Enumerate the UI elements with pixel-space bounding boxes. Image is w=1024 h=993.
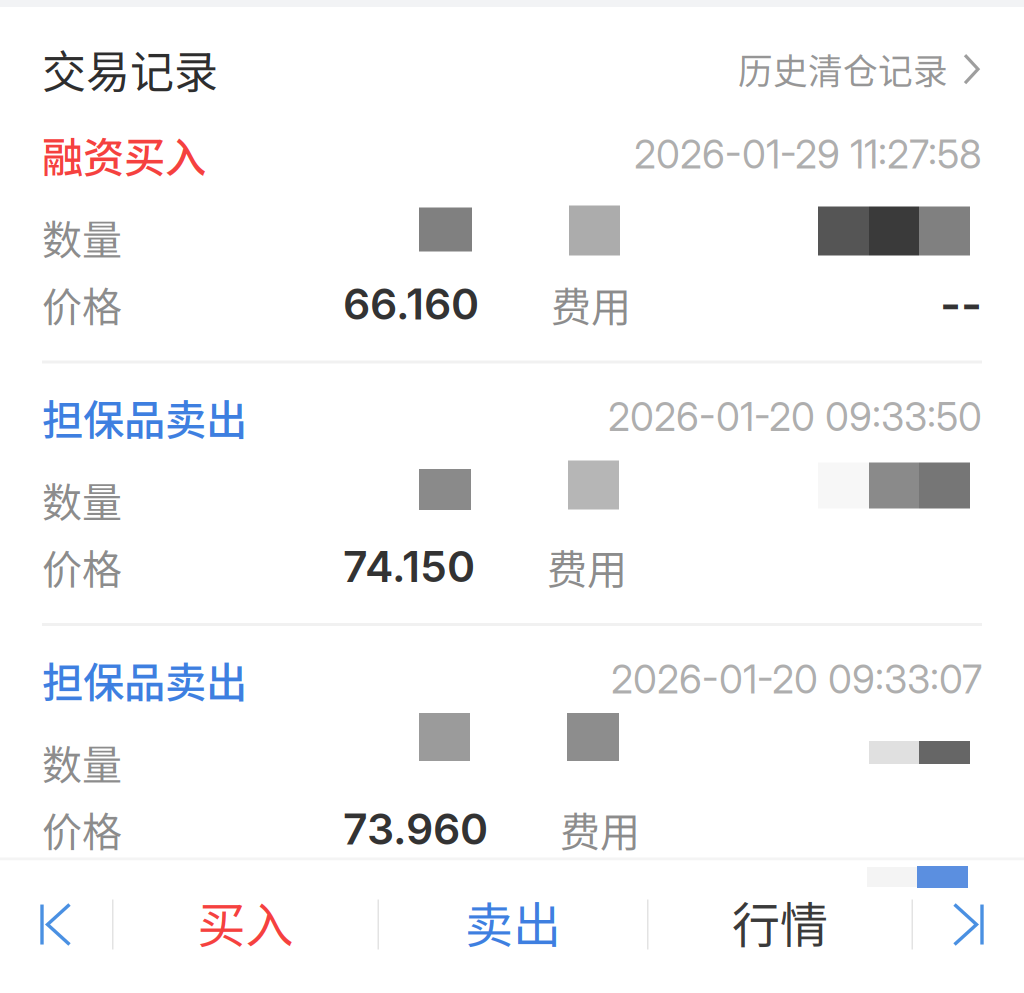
staticText: 卖出 [465, 887, 561, 956]
button[interactable]: 下一个 [913, 857, 1023, 991]
staticText: 费用 [560, 800, 640, 858]
staticText: 数量 [42, 470, 122, 528]
staticText: 历史清仓记录 [738, 44, 948, 94]
staticText: 担保品卖出 [42, 387, 247, 447]
staticText: 价格 [42, 800, 122, 858]
button[interactable]: 上一个 [0, 857, 112, 991]
staticText: 行情 [732, 887, 828, 956]
button[interactable]: 卖出 [379, 858, 647, 991]
staticText: 2026-01-20 09:33:07 [611, 656, 982, 703]
staticText: 买入 [197, 887, 293, 956]
staticText: 交易记录 [42, 37, 218, 101]
staticText: 2026-01-29 11:27:58 [634, 131, 982, 178]
button[interactable]: 行情 [648, 858, 911, 991]
staticText: 73.960 [343, 803, 488, 855]
staticText: 数量 [42, 208, 122, 266]
staticText: 74.150 [343, 541, 475, 592]
staticText: 融资买入 [42, 125, 206, 184]
button[interactable]: 历史清仓记录 [738, 44, 982, 94]
button[interactable]: 买入 [113, 858, 377, 991]
staticText: -- [940, 277, 982, 331]
staticText: 费用 [551, 275, 631, 333]
staticText: 价格 [42, 275, 122, 333]
staticText: 费用 [547, 537, 627, 595]
staticText: 价格 [42, 537, 122, 595]
staticText: 2026-01-20 09:33:50 [608, 394, 982, 440]
staticText: 66.160 [343, 278, 479, 330]
staticText: 数量 [42, 733, 122, 791]
staticText: 担保品卖出 [42, 650, 247, 709]
